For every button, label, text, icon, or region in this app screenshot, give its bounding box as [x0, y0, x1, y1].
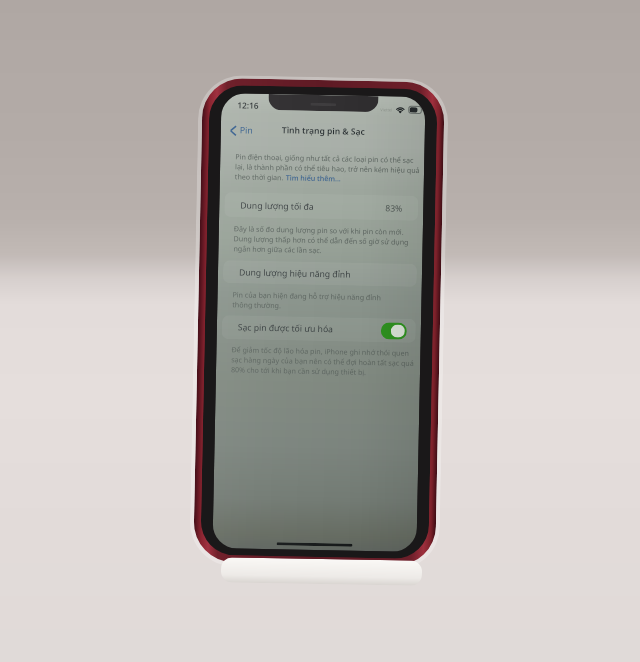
staticText: Tình trạng pin & Sạc: [282, 124, 365, 138]
staticText: Tìm hiểu thêm...: [286, 172, 341, 183]
button[interactable]: Dung lượng tối đa: [224, 192, 419, 221]
button[interactable]: Pin: [226, 121, 258, 140]
staticText: Viettel: [380, 107, 392, 112]
staticText: Để giảm tốc độ lão hóa pin, iPhone ghi n…: [231, 344, 409, 358]
staticText: theo thời gian.: [235, 171, 286, 182]
button[interactable]: Sạc pin được tối ưu hóa, đang bật: [381, 322, 407, 340]
staticText: 83%: [385, 202, 402, 215]
staticText: Sạc pin được tối ưu hóa: [238, 321, 334, 335]
staticText: Pin của bạn hiện đang hỗ trợ hiệu năng đ…: [232, 289, 382, 302]
staticText: 12:16: [237, 99, 259, 111]
staticText: lại, là thành phần có thể tiêu hao, trở …: [235, 161, 420, 175]
staticText: Pin: [240, 124, 254, 137]
staticText: Dung lượng thấp hơn có thể dẫn đến số gi…: [234, 233, 409, 247]
staticText: Dung lượng tối đa: [240, 199, 314, 213]
staticText: sạc hàng ngày của bạn nên có thể đợi hoà…: [231, 354, 414, 368]
staticText: Pin điện thoại, giống như tất cả các loạ…: [235, 151, 414, 165]
staticText: thông thường.: [232, 299, 281, 310]
staticText: 80% cho tới khi bạn cần sử dụng thiết bị…: [231, 364, 367, 377]
button[interactable]: Dung lượng hiệu năng đỉnh: [223, 260, 417, 287]
staticText: Dung lượng hiệu năng đỉnh: [239, 266, 351, 281]
staticText: Đây là số đo dung lượng pin so với khi p…: [234, 223, 404, 237]
staticText: ngắn hơn giữa các lần sạc.: [233, 243, 323, 255]
button[interactable]: Sạc pin được tối ưu hóa: [222, 315, 416, 343]
